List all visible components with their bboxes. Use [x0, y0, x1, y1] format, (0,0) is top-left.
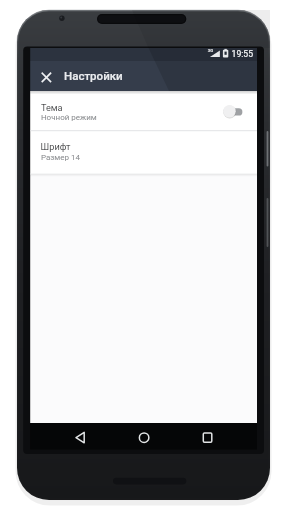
button[interactable] — [31, 131, 257, 174]
button[interactable] — [130, 424, 157, 451]
button[interactable] — [37, 68, 56, 87]
button[interactable] — [194, 424, 221, 451]
button[interactable] — [67, 424, 94, 451]
button[interactable] — [218, 101, 249, 122]
button[interactable] — [31, 91, 257, 130]
